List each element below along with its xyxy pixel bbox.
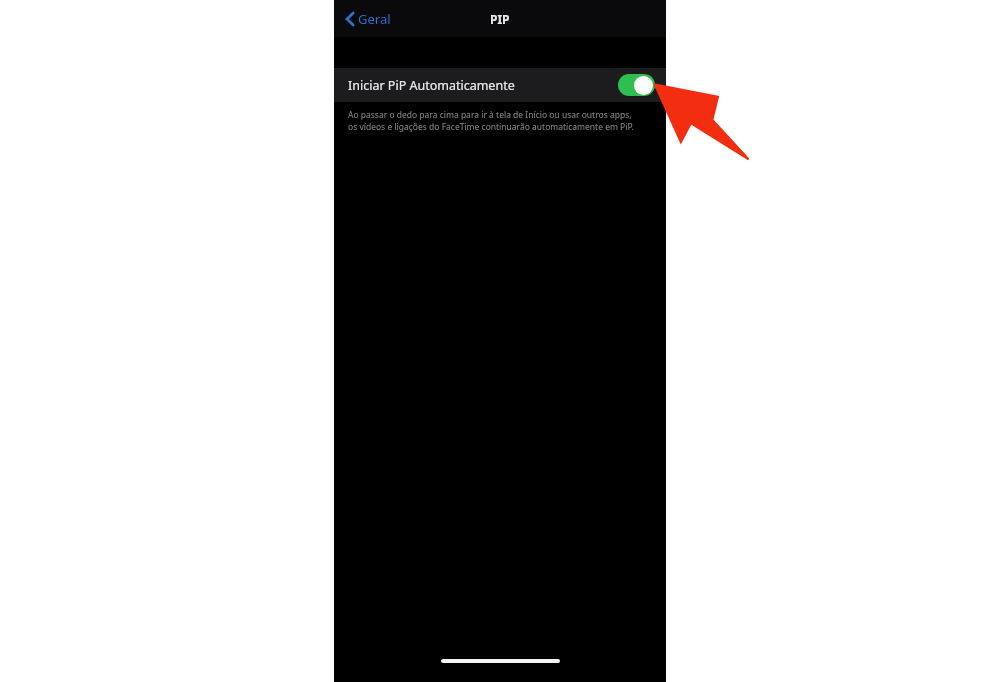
staticText: Geral bbox=[358, 10, 391, 28]
staticText: Ao passar o dedo para cima para ir à tel… bbox=[348, 109, 642, 133]
button[interactable]: Iniciar PiP Automaticamente bbox=[618, 74, 655, 96]
staticText: PIP bbox=[490, 11, 510, 27]
button[interactable]: Iniciar PiP Automaticamente bbox=[334, 68, 666, 102]
button[interactable]: Geral bbox=[343, 5, 394, 33]
staticText: Iniciar PiP Automaticamente bbox=[348, 77, 515, 94]
